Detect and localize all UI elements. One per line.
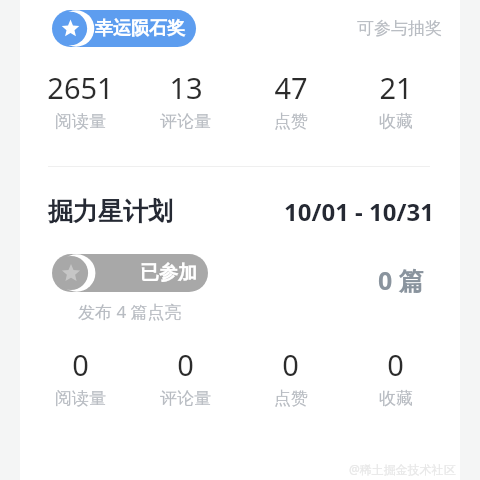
- button[interactable]: 0: [238, 345, 343, 409]
- staticText: 0 篇: [378, 263, 424, 297]
- staticText: 13: [169, 68, 203, 107]
- button[interactable]: 0: [343, 345, 448, 409]
- staticText: 评论量: [160, 388, 211, 409]
- staticText: 0: [387, 345, 404, 384]
- staticText: 收藏: [379, 111, 413, 132]
- staticText: 21: [379, 68, 413, 107]
- staticText: 幸运陨石奖: [95, 17, 185, 40]
- staticText: 已参加: [140, 261, 197, 285]
- button[interactable]: 47: [238, 68, 343, 132]
- staticText: 阅读量: [55, 111, 106, 132]
- button[interactable]: 幸运陨石奖: [52, 10, 196, 47]
- staticText: 0: [177, 345, 194, 384]
- staticText: 0: [282, 345, 299, 384]
- staticText: 47: [274, 68, 308, 107]
- button[interactable]: 0: [28, 345, 133, 409]
- button[interactable]: 21: [343, 68, 448, 132]
- button[interactable]: 13: [133, 68, 238, 132]
- staticText: 评论量: [160, 111, 211, 132]
- button[interactable]: 2651: [28, 68, 133, 132]
- staticText: 点赞: [274, 111, 308, 132]
- staticText: 2651: [47, 68, 114, 107]
- staticText: 0: [72, 345, 89, 384]
- button[interactable]: 已参加: [52, 254, 208, 292]
- staticText: 可参与抽奖: [357, 18, 442, 39]
- staticText: 点赞: [274, 388, 308, 409]
- staticText: 收藏: [379, 388, 413, 409]
- staticText: 发布 4 篇点亮: [78, 300, 182, 323]
- staticText: 10/01 - 10/31: [284, 195, 434, 228]
- button[interactable]: 0: [133, 345, 238, 409]
- button[interactable]: 掘力星计划: [48, 196, 173, 227]
- staticText: 阅读量: [55, 388, 106, 409]
- staticText: @稀土掘金技术社区: [349, 461, 456, 477]
